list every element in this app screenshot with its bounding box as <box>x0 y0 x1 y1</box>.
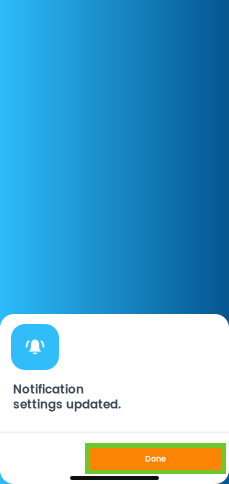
button[interactable]: Done <box>85 443 226 474</box>
staticText: Done <box>145 453 166 465</box>
staticText: settings updated. <box>13 396 121 413</box>
staticText: Notification <box>13 381 84 398</box>
